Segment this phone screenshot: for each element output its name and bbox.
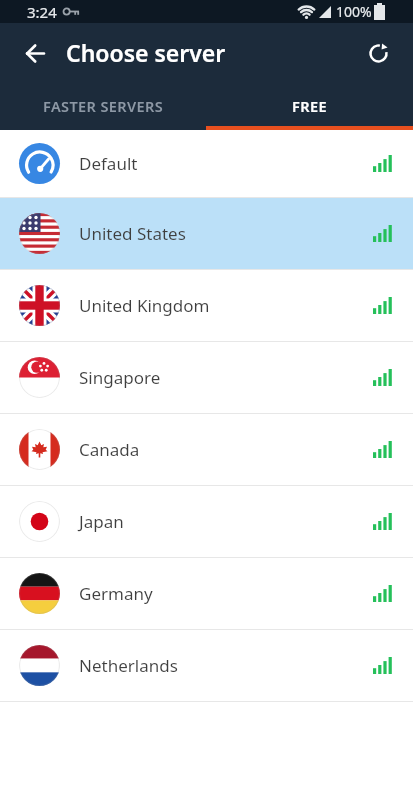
staticText: Choose server [66, 37, 226, 68]
staticText: Canada [79, 438, 140, 461]
button[interactable]: United States [0, 198, 413, 269]
button[interactable] [13, 31, 57, 75]
staticText: Netherlands [79, 654, 178, 677]
button[interactable]: Netherlands [0, 630, 413, 701]
staticText: 100% [336, 2, 372, 21]
staticText: 3:24 [27, 2, 57, 22]
staticText: FREE [292, 96, 327, 116]
staticText: Singapore [79, 366, 161, 389]
button[interactable]: FASTER SERVERS [0, 82, 206, 130]
staticText: United States [79, 222, 186, 245]
staticText: Default [79, 152, 138, 175]
button[interactable]: FREE [206, 82, 413, 130]
button[interactable]: Germany [0, 558, 413, 629]
staticText: Germany [79, 582, 153, 605]
button[interactable]: United Kingdom [0, 270, 413, 341]
staticText: Japan [79, 510, 124, 533]
staticText: United Kingdom [79, 294, 210, 317]
button[interactable] [356, 31, 400, 75]
button[interactable]: Japan [0, 486, 413, 557]
staticText: FASTER SERVERS [43, 96, 164, 116]
button[interactable]: Singapore [0, 342, 413, 413]
button[interactable]: Default [0, 130, 413, 197]
button[interactable]: Canada [0, 414, 413, 485]
